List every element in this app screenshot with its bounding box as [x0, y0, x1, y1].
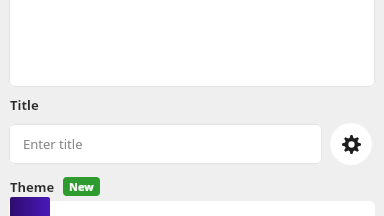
- button[interactable]: [9, 0, 375, 87]
- button[interactable]: Enter title: [9, 124, 322, 164]
- button[interactable]: New: [63, 177, 100, 196]
- button[interactable]: [9, 201, 375, 216]
- staticText: Title: [10, 96, 39, 114]
- staticText: Enter title: [23, 135, 83, 153]
- button[interactable]: Settings: [330, 123, 372, 165]
- button[interactable]: Purple theme swatch: [10, 197, 50, 216]
- staticText: New: [69, 179, 94, 194]
- staticText: Theme: [10, 178, 55, 196]
